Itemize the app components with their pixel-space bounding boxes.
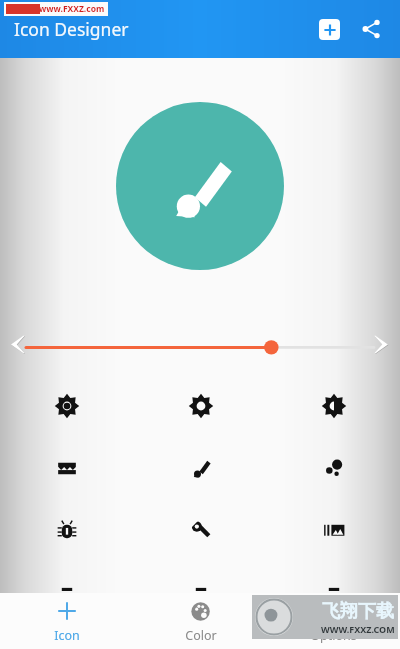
staticText: Icon Designer <box>14 17 129 41</box>
button[interactable]: Icon preview <box>116 102 284 270</box>
button[interactable]: Add <box>308 8 350 50</box>
staticText: WWW.FXXZ.COM <box>321 623 395 635</box>
staticText: 飞翔下载 <box>322 600 394 623</box>
button[interactable]: Cake <box>134 562 267 593</box>
button[interactable]: BurstMode <box>267 500 400 560</box>
button[interactable]: Previous <box>0 326 38 364</box>
button[interactable]: BrokenImage <box>0 438 134 498</box>
button[interactable]: BrightLow <box>134 376 267 436</box>
button[interactable]: Icon <box>0 593 134 649</box>
button[interactable]: Bubble <box>267 438 400 498</box>
button[interactable]: Size slider <box>26 325 374 365</box>
staticText: Color <box>185 627 217 644</box>
button[interactable]: Brush <box>134 438 267 498</box>
staticText: Icon <box>54 627 80 644</box>
button[interactable]: BugReport <box>0 500 134 560</box>
button[interactable]: Color <box>134 593 267 649</box>
button[interactable]: Business <box>0 562 134 593</box>
staticText: Options <box>310 627 357 644</box>
button[interactable]: Call <box>267 562 400 593</box>
staticText: www.FXXZ.com <box>39 3 105 15</box>
button[interactable]: BrightMedium <box>267 376 400 436</box>
button[interactable]: Build <box>134 500 267 560</box>
button[interactable]: BrightHigh <box>0 376 134 436</box>
button[interactable]: Next <box>362 326 400 364</box>
button[interactable]: Share <box>350 8 392 50</box>
button[interactable]: Options <box>267 593 400 649</box>
